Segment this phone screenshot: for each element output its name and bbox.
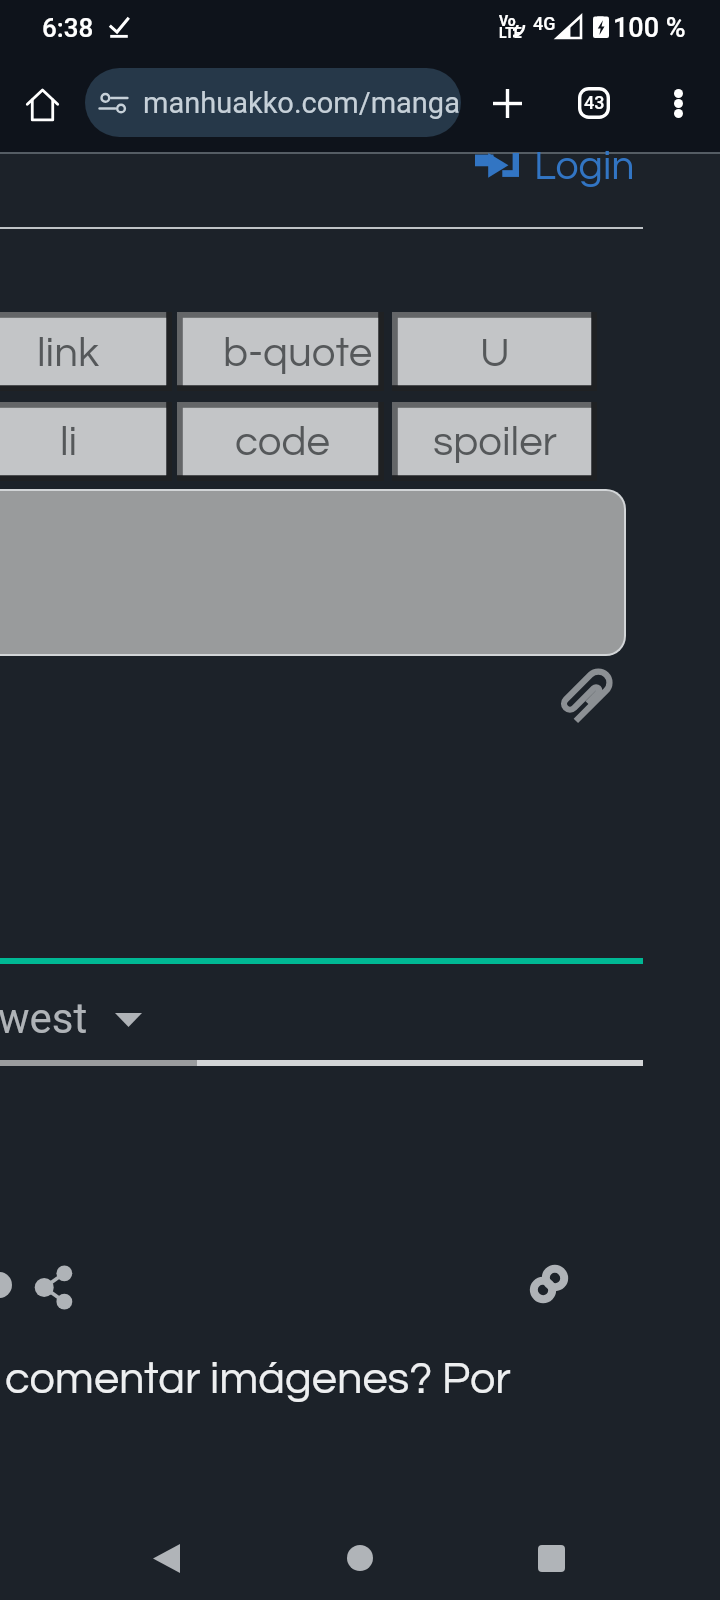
button[interactable]: U xyxy=(392,312,597,391)
staticText: li xyxy=(60,421,78,464)
button[interactable]: More options xyxy=(648,73,708,133)
staticText: code xyxy=(235,421,330,464)
button[interactable]: Share xyxy=(25,1257,85,1317)
button[interactable] xyxy=(0,489,626,656)
button[interactable]: b-quote xyxy=(177,312,384,391)
staticText: comentar imágenes? Por xyxy=(5,1356,511,1402)
staticText: 43 xyxy=(584,92,605,113)
button[interactable]: manhuakko.com/manga, xyxy=(85,68,461,137)
button[interactable]: spoiler xyxy=(392,402,597,481)
staticText: U xyxy=(480,332,510,375)
button[interactable]: Back xyxy=(136,1528,196,1588)
staticText: Login xyxy=(534,145,635,187)
button[interactable]: code xyxy=(177,402,384,481)
staticText: link xyxy=(37,332,100,375)
staticText: b-quote xyxy=(223,332,373,375)
staticText: 6:38 xyxy=(42,13,94,43)
staticText: spoiler xyxy=(433,421,558,464)
button[interactable]: Attach file xyxy=(553,662,619,728)
button[interactable]: Tabs xyxy=(564,73,624,133)
staticText: manhuakko.com/manga, xyxy=(143,86,461,120)
button[interactable]: Login xyxy=(470,148,650,194)
button[interactable]: Home xyxy=(12,75,72,135)
staticText: 100 % xyxy=(613,12,686,44)
button[interactable]: li xyxy=(0,402,172,481)
staticText: 4G xyxy=(533,13,556,34)
button[interactable]: Recent apps xyxy=(521,1528,581,1588)
button[interactable]: Copy link xyxy=(519,1254,579,1314)
staticText: west xyxy=(0,994,88,1040)
button[interactable]: Home xyxy=(330,1528,390,1588)
staticText: Vo xyxy=(499,13,516,29)
button[interactable]: New tab xyxy=(477,73,537,133)
button[interactable]: link xyxy=(0,312,172,391)
button[interactable]: west xyxy=(0,994,148,1040)
staticText: LTE xyxy=(499,25,522,41)
